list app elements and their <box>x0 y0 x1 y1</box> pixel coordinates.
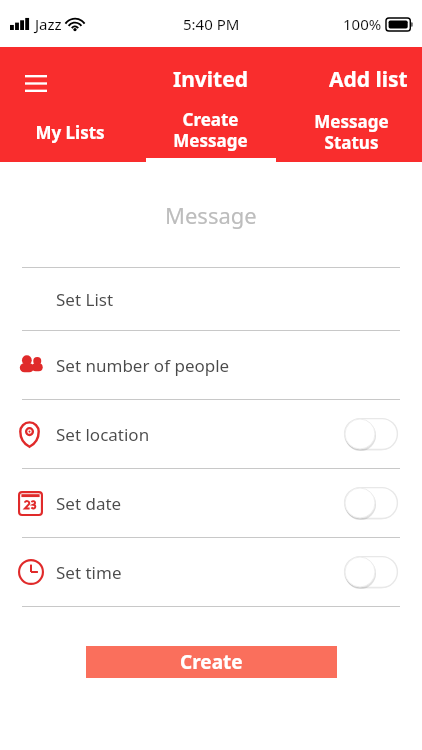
staticText: Create <box>180 649 243 675</box>
staticText: Set date <box>56 492 122 515</box>
staticText: Add list <box>329 65 408 94</box>
staticText: Jazz <box>35 14 62 34</box>
button[interactable]: Menu <box>14 61 58 105</box>
button[interactable]: Set location <box>0 400 422 468</box>
button[interactable]: Set date <box>0 469 422 537</box>
staticText: Create Message <box>173 108 248 152</box>
button[interactable]: Message Status <box>281 104 422 162</box>
button[interactable]: Toggle <box>344 418 398 450</box>
button[interactable]: Set number of people <box>0 331 422 399</box>
staticText: 5:40 PM <box>183 14 240 34</box>
staticText: Set List <box>56 288 114 311</box>
button[interactable]: Set time <box>0 538 422 606</box>
button[interactable]: Create <box>86 646 337 678</box>
staticText: Set location <box>56 423 150 446</box>
button[interactable]: Message <box>0 162 422 267</box>
button[interactable]: Toggle <box>344 556 398 588</box>
button[interactable]: My Lists <box>0 104 140 162</box>
staticText: Set number of people <box>56 354 230 377</box>
button[interactable]: Add list <box>321 57 416 102</box>
staticText: Set time <box>56 561 122 584</box>
staticText: Invited <box>173 65 249 94</box>
staticText: Message Status <box>314 110 389 154</box>
button[interactable]: Toggle <box>344 487 398 519</box>
button[interactable]: Set List <box>0 268 422 330</box>
staticText: 100% <box>343 14 382 34</box>
staticText: My Lists <box>35 121 105 144</box>
staticText: Message <box>165 200 257 230</box>
button[interactable]: Create Message <box>140 104 281 162</box>
